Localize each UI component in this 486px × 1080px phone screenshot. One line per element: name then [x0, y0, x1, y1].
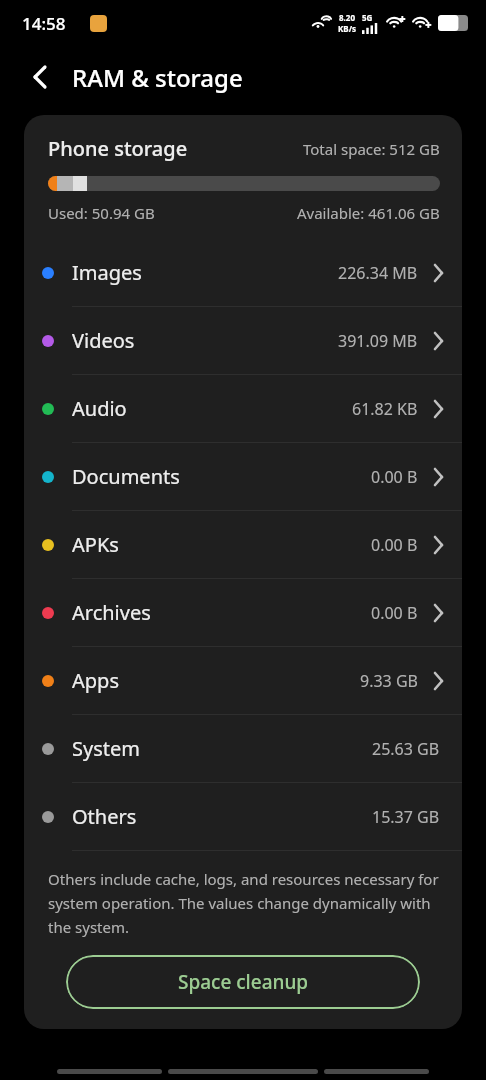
- staticText: 8.20: [339, 12, 355, 23]
- staticText: System: [72, 735, 140, 762]
- staticText: Available: 461.06 GB: [297, 203, 440, 223]
- staticText: 0.00 B: [371, 602, 418, 624]
- staticText: 15.37 GB: [372, 806, 440, 828]
- staticText: RAM & storage: [72, 61, 243, 94]
- staticText: Used: 50.94 GB: [48, 203, 155, 223]
- button[interactable]: Back: [18, 55, 62, 99]
- button[interactable]: Others: [24, 783, 462, 850]
- button[interactable]: Images: [24, 239, 462, 306]
- staticText: Space cleanup: [178, 969, 309, 995]
- staticText: Videos: [72, 327, 135, 354]
- button[interactable]: Documents: [24, 443, 462, 510]
- staticText: 9.33 GB: [360, 670, 418, 692]
- staticText: 0.00 B: [371, 534, 418, 556]
- staticText: Others include cache, logs, and resource…: [48, 869, 442, 937]
- staticText: 391.09 MB: [338, 330, 418, 352]
- staticText: Total space: 512 GB: [303, 139, 440, 159]
- staticText: 226.34 MB: [338, 262, 418, 284]
- staticText: 0.00 B: [371, 466, 418, 488]
- staticText: Apps: [72, 667, 119, 694]
- staticText: 14:58: [22, 12, 66, 35]
- button[interactable]: Space cleanup: [66, 955, 420, 1009]
- staticText: Images: [72, 259, 142, 286]
- staticText: 61.82 KB: [352, 398, 418, 420]
- button[interactable]: Archives: [24, 579, 462, 646]
- staticText: 5G: [362, 12, 373, 23]
- button[interactable]: Audio: [24, 375, 462, 442]
- button[interactable]: Videos: [24, 307, 462, 374]
- button[interactable]: Apps: [24, 647, 462, 714]
- staticText: Audio: [72, 395, 127, 422]
- staticText: Archives: [72, 599, 151, 626]
- staticText: APKs: [72, 531, 119, 558]
- button[interactable]: APKs: [24, 511, 462, 578]
- staticText: Documents: [72, 463, 180, 490]
- staticText: Phone storage: [48, 135, 188, 162]
- staticText: Others: [72, 803, 137, 830]
- staticText: KB/s: [338, 23, 356, 34]
- button[interactable]: System: [24, 715, 462, 782]
- staticText: 25.63 GB: [372, 738, 440, 760]
